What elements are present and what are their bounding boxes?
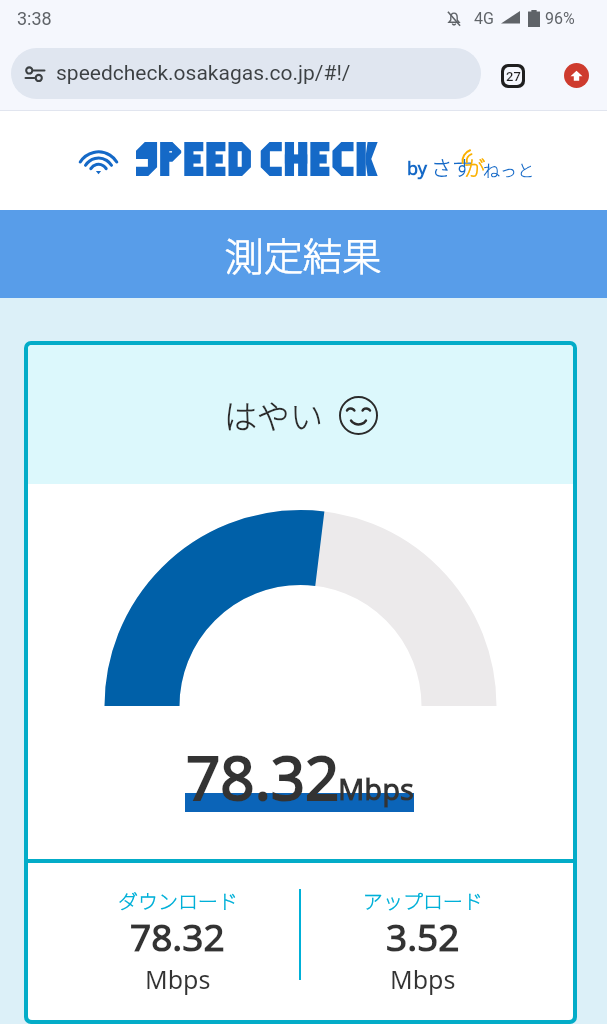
button[interactable]: Update available: [564, 63, 589, 88]
staticText: by: [407, 156, 427, 181]
staticText: が: [464, 152, 485, 182]
staticText: 4G: [474, 9, 494, 28]
staticText: 3.52: [386, 911, 460, 961]
staticText: 測定結果: [225, 226, 382, 282]
staticText: 78.32: [130, 911, 225, 961]
staticText: 96%: [545, 9, 575, 28]
staticText: 78.32: [186, 736, 340, 818]
staticText: 27: [506, 69, 521, 84]
button[interactable]: Tabs: [500, 63, 526, 89]
staticText: Mbps: [390, 962, 456, 996]
button[interactable]: speedcheck.osakagas.co.jp/#!/: [11, 48, 481, 99]
staticText: speedcheck.osakagas.co.jp/#!/: [56, 61, 351, 86]
staticText: Mbps: [145, 962, 211, 996]
staticText: ねっと: [483, 157, 534, 182]
staticText: はやい: [224, 391, 323, 439]
staticText: 3:38: [17, 8, 52, 29]
staticText: さす: [431, 152, 473, 182]
staticText: Mbps: [338, 769, 414, 808]
staticText: ダウンロード: [118, 886, 238, 915]
staticText: アップロード: [363, 886, 483, 915]
